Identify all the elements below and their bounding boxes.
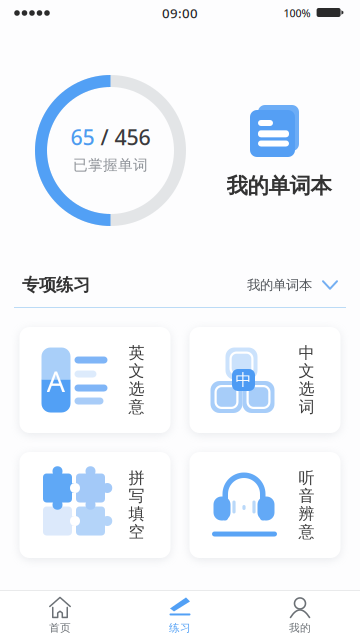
staticText: 456 — [114, 123, 150, 151]
staticText: 09:00 — [162, 4, 198, 22]
button[interactable]: 首页 — [0, 591, 120, 640]
button[interactable]: 拼 — [19, 452, 170, 558]
staticText: 我的单词本 — [247, 277, 312, 293]
staticText: 选 — [298, 379, 314, 399]
staticText: 练习 — [169, 621, 191, 634]
button[interactable]: 我的单词本 — [241, 273, 337, 297]
button[interactable]: A — [19, 327, 170, 433]
staticText: 首页 — [49, 621, 71, 634]
staticText: 专项练习 — [22, 274, 90, 296]
staticText: 音 — [298, 486, 314, 506]
staticText: 中 — [298, 343, 314, 363]
staticText: 文 — [298, 361, 314, 381]
staticText: / — [94, 123, 114, 151]
staticText: 辨 — [298, 504, 314, 524]
button[interactable]: 我的 — [240, 591, 360, 640]
button[interactable]: 中 — [189, 327, 340, 433]
button[interactable]: 我的单词本 — [204, 93, 354, 203]
button[interactable]: 练习 — [120, 591, 240, 640]
staticText: 我的 — [289, 621, 311, 634]
staticText: 已掌握单词 — [73, 156, 148, 174]
staticText: 英 — [128, 343, 144, 363]
button[interactable]: 听 — [189, 452, 340, 558]
staticText: A — [46, 361, 65, 400]
staticText: 拼 — [128, 468, 144, 488]
staticText: 选 — [128, 379, 144, 399]
staticText: 听 — [298, 468, 314, 488]
staticText: 词 — [298, 397, 314, 417]
staticText: 我的单词本 — [226, 173, 331, 199]
staticText: 空 — [128, 522, 144, 542]
staticText: 65 — [70, 123, 94, 151]
staticText: 中 — [235, 370, 251, 390]
staticText: 填 — [128, 504, 144, 524]
staticText: 文 — [128, 361, 144, 381]
staticText: 写 — [128, 486, 144, 506]
staticText: 100% — [283, 6, 310, 20]
staticText: 意 — [128, 397, 144, 417]
staticText: 意 — [298, 522, 314, 542]
